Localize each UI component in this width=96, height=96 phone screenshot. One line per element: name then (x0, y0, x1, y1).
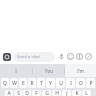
staticText: O (79, 80, 83, 87)
button[interactable]: You (33, 64, 64, 77)
button[interactable]: A (5, 90, 13, 96)
staticText: Q (3, 80, 7, 87)
button[interactable]: Attach (84, 52, 93, 61)
staticText: F (35, 90, 38, 96)
button[interactable]: Emoji (66, 52, 75, 61)
staticText: P (89, 80, 93, 87)
button[interactable]: O (76, 78, 85, 88)
button[interactable]: G (42, 90, 51, 96)
button[interactable]: D (23, 90, 31, 96)
button[interactable]: Y (46, 78, 55, 88)
button[interactable]: R (28, 78, 36, 88)
button[interactable]: J (62, 90, 71, 96)
button[interactable]: S (14, 90, 22, 96)
button[interactable]: K (72, 90, 81, 96)
staticText: Y (49, 80, 52, 87)
button[interactable]: Voice message (57, 52, 66, 61)
button[interactable]: I (0, 64, 32, 77)
button[interactable]: U (56, 78, 65, 88)
staticText: K (75, 90, 79, 96)
staticText: L (85, 90, 88, 96)
button[interactable]: P (86, 78, 95, 88)
staticText: H (55, 90, 59, 96)
button[interactable]: Send a chat (13, 52, 55, 62)
button[interactable]: T (37, 78, 45, 88)
staticText: I'm (77, 68, 84, 74)
button[interactable]: F (32, 90, 41, 96)
staticText: Send a chat (17, 54, 40, 60)
button[interactable]: I (66, 78, 75, 88)
button[interactable]: L (82, 90, 91, 96)
button[interactable]: Camera (3, 53, 11, 61)
staticText: W (12, 80, 17, 87)
staticText: R (30, 80, 34, 87)
staticText: D (25, 90, 29, 96)
staticText: S (17, 90, 20, 96)
button[interactable]: E (19, 78, 27, 88)
staticText: You (45, 68, 53, 74)
staticText: U (59, 80, 63, 87)
staticText: J (66, 90, 68, 96)
staticText: T (40, 80, 43, 87)
button[interactable]: Stickers (75, 52, 84, 61)
button[interactable]: W (10, 78, 18, 88)
button[interactable]: H (52, 90, 61, 96)
staticText: E (22, 80, 25, 87)
button[interactable]: Q (1, 78, 9, 88)
staticText: I (15, 68, 17, 74)
staticText: A (7, 90, 11, 96)
button[interactable]: I'm (65, 64, 96, 77)
staticText: I (70, 80, 72, 87)
staticText: G (45, 90, 49, 96)
